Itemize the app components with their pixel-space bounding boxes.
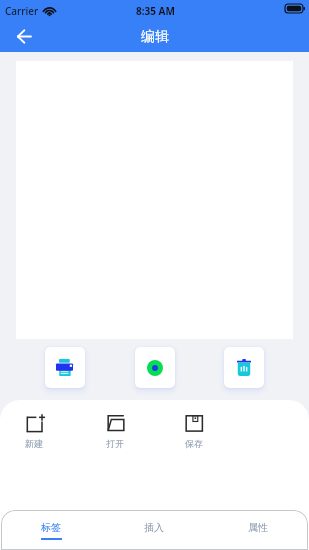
- button[interactable]: 打开: [93, 410, 137, 452]
- staticText: Carrier: [5, 4, 39, 18]
- button[interactable]: 属性: [233, 510, 283, 550]
- staticText: 打开: [106, 438, 124, 449]
- button[interactable]: 新建: [12, 410, 56, 452]
- staticText: 新建: [25, 438, 43, 449]
- button[interactable]: 插入: [129, 510, 179, 550]
- button[interactable]: Record: [135, 347, 175, 388]
- staticText: 8:35 AM: [136, 4, 175, 18]
- button[interactable]: Delete: [224, 347, 264, 388]
- button[interactable]: 标签: [26, 510, 76, 550]
- staticText: 属性: [248, 521, 268, 534]
- button[interactable]: Back: [5, 21, 42, 52]
- button[interactable]: 保存: [172, 410, 216, 452]
- staticText: 保存: [185, 438, 203, 449]
- staticText: 标签: [41, 521, 61, 534]
- staticText: 编辑: [141, 28, 169, 46]
- button[interactable]: Print: [45, 347, 85, 388]
- staticText: 插入: [144, 521, 164, 534]
